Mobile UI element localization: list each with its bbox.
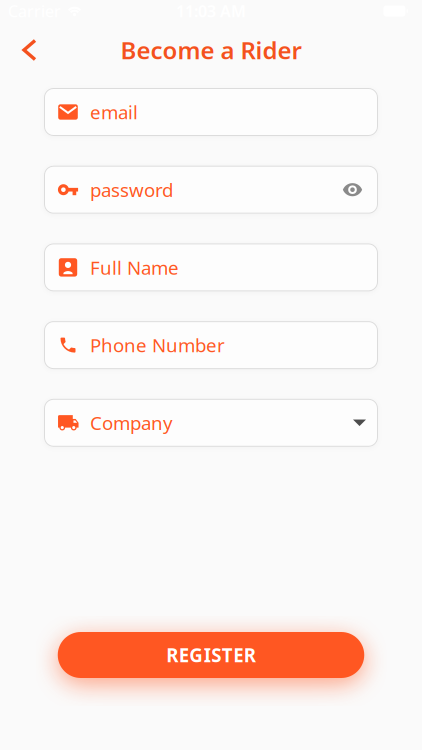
button[interactable]: Phone Number <box>44 321 378 369</box>
staticText: Become a Rider <box>120 34 301 66</box>
button[interactable]: Show password <box>342 179 378 200</box>
button[interactable]: Company <box>44 399 378 447</box>
button[interactable]: email <box>44 88 378 136</box>
staticText: Phone Number <box>90 333 225 357</box>
button[interactable]: REGISTER <box>58 632 364 678</box>
staticText: Company <box>90 410 173 435</box>
staticText: email <box>90 100 138 124</box>
button[interactable]: Full Name <box>44 243 378 291</box>
staticText: REGISTER <box>166 643 256 667</box>
button[interactable]: Back <box>0 32 35 67</box>
staticText: password <box>90 177 173 202</box>
button[interactable]: password <box>44 166 378 214</box>
staticText: Full Name <box>90 255 179 280</box>
